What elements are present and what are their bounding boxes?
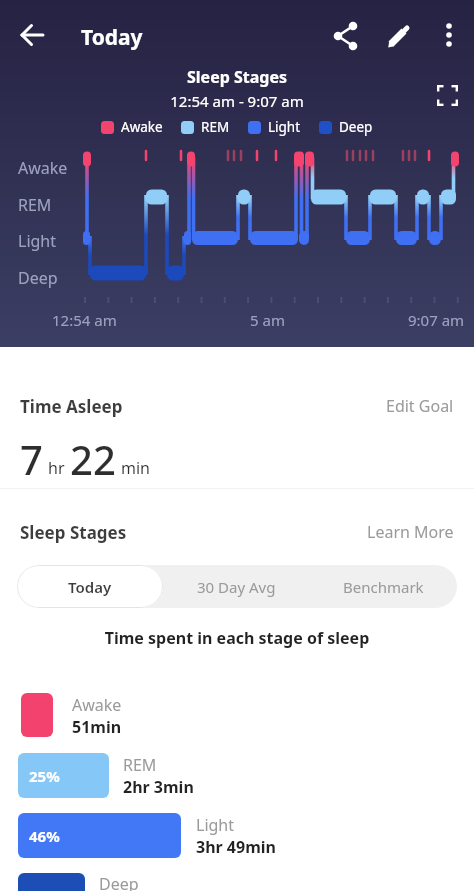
button[interactable]: Benchmark (310, 565, 457, 608)
button[interactable] (440, 22, 458, 40)
button[interactable]: 30 Day Avg (163, 565, 310, 608)
staticText: Sleep Stages (0, 66, 474, 88)
staticText: Awake (121, 118, 163, 136)
staticText: Sleep Stages (20, 521, 127, 544)
staticText: 51min (72, 716, 122, 738)
staticText: 46% (29, 826, 60, 846)
button[interactable] (330, 20, 360, 50)
staticText: Benchmark (343, 577, 424, 597)
staticText: Light (196, 814, 235, 836)
staticText: Awake (18, 157, 68, 179)
button[interactable]: Edit Goal (386, 395, 454, 417)
staticText: 3hr 49min (196, 836, 276, 858)
staticText: Today (68, 577, 112, 597)
staticText: REM (18, 194, 52, 216)
staticText: Deep (99, 873, 139, 891)
staticText: 22 (70, 432, 116, 486)
staticText: 25% (29, 766, 60, 786)
staticText: REM (201, 118, 230, 136)
staticText: Light (18, 230, 57, 252)
staticText: 5 am (250, 310, 285, 330)
button[interactable] (21, 693, 53, 737)
staticText: Deep (18, 267, 58, 289)
button[interactable] (18, 873, 85, 891)
staticText: 2hr 3min (123, 776, 194, 798)
button[interactable] (18, 21, 46, 49)
staticText: 12:54 am (52, 310, 117, 330)
button[interactable]: Today (17, 565, 163, 608)
staticText: Time spent in each stage of sleep (0, 627, 474, 649)
button[interactable] (437, 85, 458, 106)
staticText: 7 (20, 432, 43, 486)
staticText: hr (48, 457, 65, 479)
staticText: Deep (339, 118, 373, 136)
staticText: 12:54 am - 9:07 am (0, 91, 474, 111)
staticText: 30 Day Avg (197, 577, 276, 597)
button[interactable]: Learn More (367, 521, 454, 543)
staticText: Awake (72, 694, 122, 716)
staticText: Light (268, 118, 301, 136)
staticText: min (121, 457, 150, 479)
button[interactable]: 25% (18, 753, 109, 798)
staticText: Today (81, 23, 143, 52)
staticText: 9:07 am (408, 310, 465, 330)
staticText: Time Asleep (20, 395, 123, 418)
button[interactable]: 46% (18, 813, 181, 858)
button[interactable] (388, 24, 412, 48)
staticText: REM (123, 754, 157, 776)
